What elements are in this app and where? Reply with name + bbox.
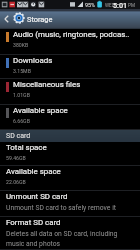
- button[interactable]: Total space: [0, 142, 140, 166]
- staticText: WED: [105, 3, 115, 8]
- button[interactable]: Audio (music, ringtones, podcas..: [0, 29, 140, 55]
- staticText: 1.01GB: [13, 92, 30, 98]
- button[interactable]: Unmount SD card: [0, 191, 140, 217]
- staticText: 22.06GB: [6, 179, 26, 185]
- button[interactable]: Miscellaneous files: [0, 79, 140, 105]
- staticText: 3.15MB: [13, 68, 31, 74]
- staticText: Format SD card: [6, 218, 61, 227]
- staticText: Available space: [6, 167, 61, 176]
- staticText: Downloads: [13, 56, 53, 65]
- button[interactable]: Format SD card: [0, 217, 140, 250]
- button[interactable]: Back: [0, 12, 12, 26]
- staticText: Audio (music, ringtones, podcas..: [13, 30, 130, 39]
- staticText: Total space: [6, 143, 47, 152]
- staticText: 95%: [85, 2, 96, 8]
- staticText: Storage: [27, 15, 53, 24]
- button[interactable]: Available space: [0, 105, 140, 130]
- staticText: Miscellaneous files: [13, 80, 81, 89]
- staticText: 59.46GB: [6, 155, 26, 161]
- staticText: 6.66GB: [13, 118, 30, 124]
- button[interactable]: Available space: [0, 166, 140, 191]
- staticText: 5:01: [113, 1, 128, 9]
- staticText: SD card: [6, 132, 31, 140]
- staticText: 380KB: [13, 42, 29, 48]
- button[interactable]: Downloads: [0, 55, 140, 79]
- staticText: Unmount SD card to safely remove it: [6, 204, 117, 212]
- staticText: PM: [128, 3, 135, 8]
- staticText: Available space: [13, 106, 68, 115]
- staticText: Deletes all data on SD card, including m…: [6, 230, 118, 248]
- staticText: Unmount SD card: [6, 192, 68, 201]
